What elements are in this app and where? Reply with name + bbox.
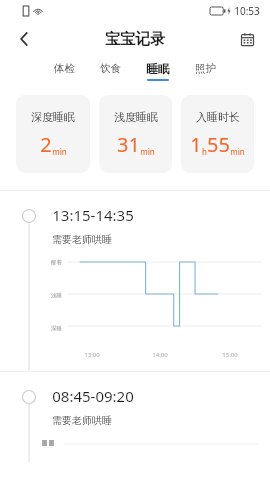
staticText: 照护 <box>195 62 216 75</box>
button[interactable]: 深度睡眠 <box>16 95 90 173</box>
staticText: 饮食 <box>100 62 121 75</box>
staticText: min <box>230 146 245 157</box>
staticText: 浅睡 <box>51 292 62 299</box>
button[interactable]: 睡眠 <box>144 61 172 81</box>
button[interactable]: 浅度睡眠 <box>99 95 172 173</box>
staticText: 2 <box>40 131 52 158</box>
staticText: h <box>202 146 207 157</box>
button[interactable]: 照护 <box>193 62 218 80</box>
staticText: 14:00 <box>152 351 168 359</box>
staticText: 体检 <box>54 62 75 75</box>
staticText: 深度睡眠 <box>31 110 75 124</box>
staticText: 13:15-14:35 <box>52 205 134 225</box>
staticText: 1 <box>190 131 202 158</box>
button[interactable]: 08:45-09:20 <box>0 372 270 462</box>
button[interactable]: 13:15-14:35 <box>0 191 270 371</box>
staticText: min <box>140 146 155 157</box>
staticText: min <box>52 146 67 157</box>
staticText: 深睡 <box>51 325 62 332</box>
staticText: 31 <box>117 131 140 158</box>
staticText: 醒着 <box>51 259 62 266</box>
staticText: 需要老师哄睡 <box>52 233 112 246</box>
staticText: 入睡时长 <box>196 110 240 124</box>
staticText: 10:53 <box>234 4 260 18</box>
staticText: 08:45-09:20 <box>52 386 134 406</box>
staticText: 15:00 <box>222 351 238 359</box>
button[interactable]: 体检 <box>52 62 77 80</box>
staticText: 睡眠 <box>146 61 170 76</box>
button[interactable]: Back <box>8 23 40 55</box>
button[interactable]: 饮食 <box>98 62 123 80</box>
button[interactable]: Calendar <box>232 24 262 54</box>
staticText: 55 <box>207 131 230 158</box>
button[interactable]: 入睡时长 <box>181 95 254 173</box>
staticText: 宝宝记录 <box>105 30 165 49</box>
staticText: 13:00 <box>84 351 100 359</box>
staticText: 需要老师哄睡 <box>52 414 112 427</box>
staticText: 浅度睡眠 <box>114 110 158 124</box>
